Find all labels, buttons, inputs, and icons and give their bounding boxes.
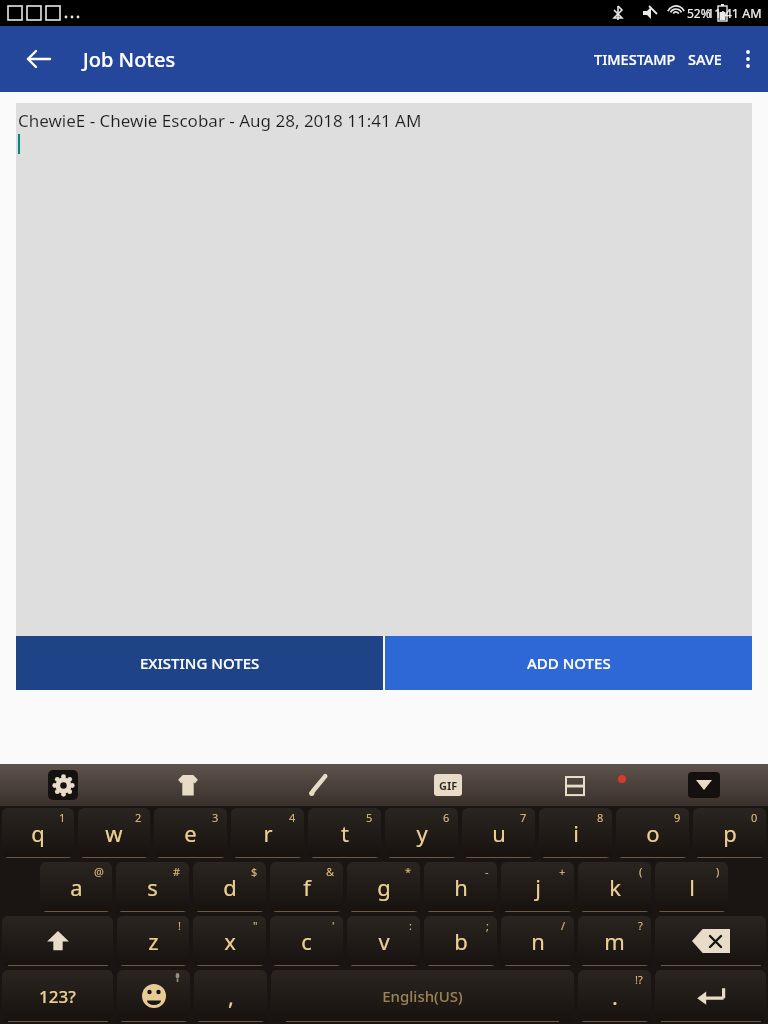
button[interactable]: *: [347, 862, 420, 912]
staticText: English(US): [382, 986, 463, 1006]
button[interactable]: Theme: [175, 772, 201, 798]
staticText: u: [492, 818, 506, 848]
staticText: 4: [289, 810, 296, 825]
staticText: (: [639, 864, 643, 879]
button[interactable]: TIMESTAMP: [588, 37, 682, 81]
button[interactable]: ': [270, 916, 343, 966]
staticText: y: [416, 818, 428, 848]
button[interactable]: ": [193, 916, 266, 966]
staticText: w: [105, 818, 123, 848]
staticText: r: [263, 818, 273, 848]
staticText: /: [561, 918, 566, 933]
staticText: 3: [212, 810, 219, 825]
button[interactable]: 4: [231, 808, 304, 858]
staticText: h: [454, 872, 468, 902]
staticText: 1: [59, 810, 66, 825]
button[interactable]: $: [193, 862, 266, 912]
button[interactable]: Keyboard settings: [48, 770, 78, 800]
staticText: o: [646, 818, 660, 848]
button[interactable]: 2: [78, 808, 150, 858]
button[interactable]: More options: [728, 39, 768, 79]
staticText: g: [377, 872, 391, 902]
staticText: x: [224, 926, 236, 956]
staticText: 0: [751, 810, 758, 825]
button[interactable]: /: [501, 916, 574, 966]
button[interactable]: !?: [578, 970, 651, 1022]
button[interactable]: (: [578, 862, 651, 912]
staticText: SAVE: [688, 49, 722, 69]
button[interactable]: Clipboard: [563, 773, 587, 797]
button[interactable]: ADD NOTES: [385, 636, 752, 690]
staticText: EXISTING NOTES: [140, 653, 260, 673]
button[interactable]: #: [116, 862, 189, 912]
staticText: b: [454, 926, 468, 956]
staticText: $: [251, 864, 258, 879]
staticText: 9: [674, 810, 681, 825]
staticText: *: [405, 864, 412, 879]
staticText: &: [326, 864, 335, 879]
button[interactable]: Handwriting: [305, 772, 331, 798]
button[interactable]: 0: [693, 808, 766, 858]
button[interactable]: 9: [616, 808, 689, 858]
staticText: 11:41 AM: [707, 5, 762, 22]
button[interactable]: Back: [18, 39, 58, 79]
button[interactable]: @: [40, 862, 112, 912]
button[interactable]: ?: [578, 916, 651, 966]
button[interactable]: EXISTING NOTES: [16, 636, 383, 690]
button[interactable]: ;: [424, 916, 497, 966]
staticText: a: [70, 872, 83, 902]
staticText: ADD NOTES: [527, 653, 611, 673]
staticText: v: [378, 926, 390, 956]
staticText: #: [173, 864, 181, 879]
staticText: Job Notes: [83, 46, 176, 73]
staticText: ,: [228, 981, 234, 1011]
button[interactable]: Hide keyboard: [688, 772, 720, 798]
staticText: s: [147, 872, 158, 902]
button[interactable]: Emoji: [117, 970, 190, 1022]
button[interactable]: 8: [539, 808, 612, 858]
button[interactable]: -: [424, 862, 497, 912]
button[interactable]: +: [501, 862, 574, 912]
staticText: ?: [638, 918, 643, 933]
staticText: !?: [635, 972, 643, 987]
staticText: ": [253, 918, 258, 933]
staticText: k: [609, 872, 621, 902]
button[interactable]: ChewieE - Chewie Escobar - Aug 28, 2018 …: [16, 103, 752, 636]
button[interactable]: 7: [462, 808, 535, 858]
staticText: ': [332, 918, 335, 933]
button[interactable]: !: [117, 916, 189, 966]
staticText: @: [94, 864, 104, 879]
button[interactable]: :: [347, 916, 420, 966]
button[interactable]: 5: [308, 808, 381, 858]
staticText: p: [723, 818, 737, 848]
button[interactable]: SAVE: [682, 37, 728, 81]
staticText: TIMESTAMP: [594, 49, 676, 69]
button[interactable]: Backspace: [655, 916, 766, 966]
staticText: m: [604, 926, 625, 956]
button[interactable]: 1: [2, 808, 74, 858]
staticText: ): [716, 864, 720, 879]
staticText: f: [303, 872, 311, 902]
button[interactable]: ): [655, 862, 728, 912]
staticText: .: [612, 981, 618, 1011]
staticText: :: [409, 918, 412, 933]
staticText: ;: [486, 918, 489, 933]
button[interactable]: 3: [154, 808, 227, 858]
staticText: n: [531, 926, 545, 956]
staticText: j: [535, 872, 541, 902]
button[interactable]: 6: [385, 808, 458, 858]
staticText: ChewieE - Chewie Escobar - Aug 28, 2018 …: [18, 109, 422, 132]
staticText: 7: [520, 810, 527, 825]
button[interactable]: English(US): [271, 970, 574, 1022]
staticText: GIF: [439, 778, 458, 793]
staticText: 52%: [687, 5, 711, 21]
button[interactable]: &: [270, 862, 343, 912]
button[interactable]: ,: [194, 970, 267, 1022]
staticText: 2: [135, 810, 142, 825]
button[interactable]: GIF: [434, 774, 462, 796]
button[interactable]: Shift: [2, 916, 113, 966]
staticText: c: [301, 926, 312, 956]
button[interactable]: 123?: [2, 970, 113, 1022]
button[interactable]: Enter: [655, 970, 766, 1022]
staticText: e: [184, 818, 197, 848]
